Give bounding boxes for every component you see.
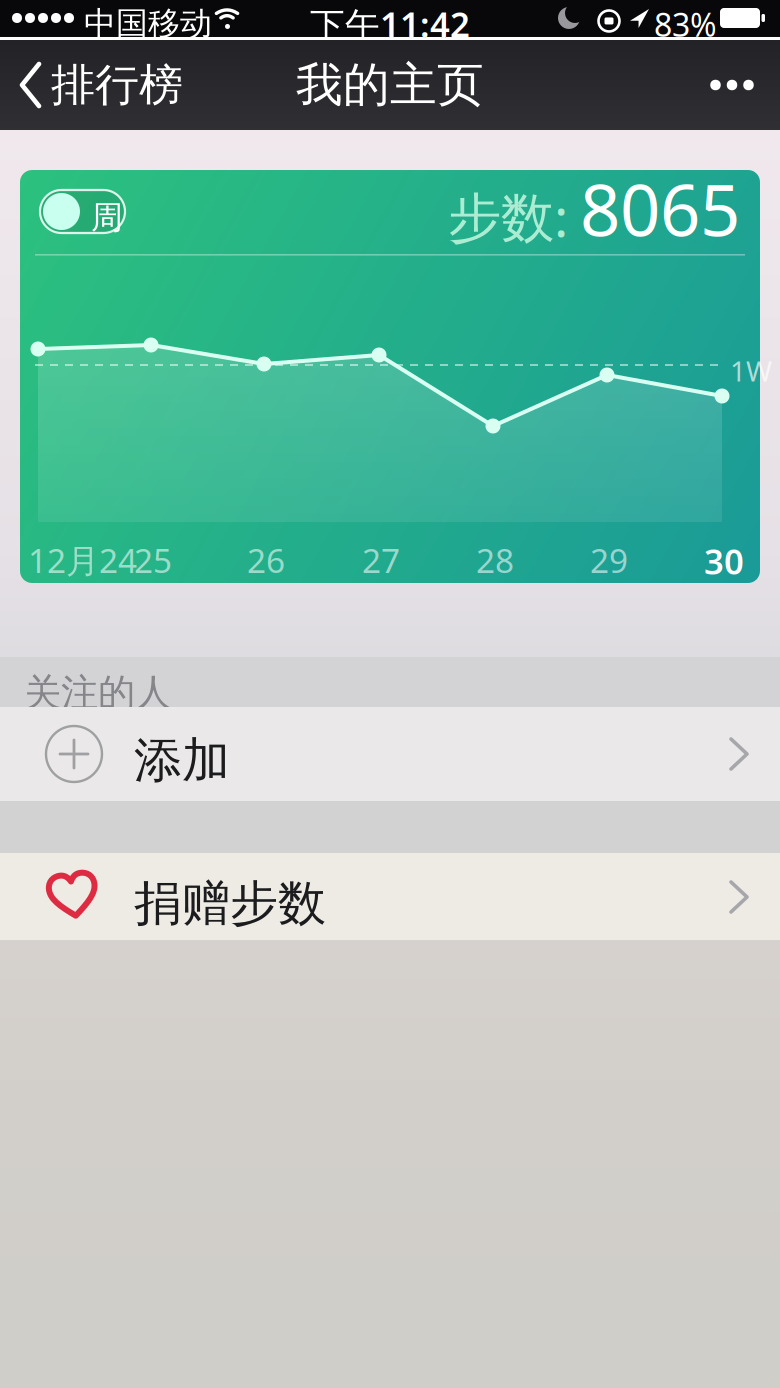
staticText: 30 xyxy=(704,538,744,584)
staticText: 中国移动 xyxy=(84,4,212,43)
staticText: 26 xyxy=(247,538,285,582)
staticText: 29 xyxy=(590,538,628,582)
staticText: 12月24 xyxy=(28,538,137,582)
button[interactable]: 排行榜 xyxy=(0,40,161,130)
button[interactable]: 捐赠步数 xyxy=(0,853,780,940)
staticText: 1W xyxy=(730,352,772,389)
button[interactable]: 周/月切换 xyxy=(20,170,105,213)
staticText: 周 xyxy=(91,198,123,237)
staticText: 下午11:42 xyxy=(310,1,470,47)
staticText: 捐赠步数 xyxy=(134,874,326,933)
staticText: 排行榜 xyxy=(51,58,183,112)
staticText: 25 xyxy=(134,538,172,582)
staticText: 我的主页 xyxy=(296,56,484,114)
button[interactable]: More xyxy=(0,40,70,130)
button[interactable]: 添加 xyxy=(0,707,780,801)
staticText: 28 xyxy=(476,538,514,582)
staticText: 关注的人 xyxy=(24,670,172,716)
staticText: 83% xyxy=(654,3,717,45)
staticText: 步数: xyxy=(448,181,568,252)
staticText: 8065 xyxy=(580,162,740,256)
staticText: 添加 xyxy=(134,731,230,790)
staticText: 27 xyxy=(362,538,400,582)
